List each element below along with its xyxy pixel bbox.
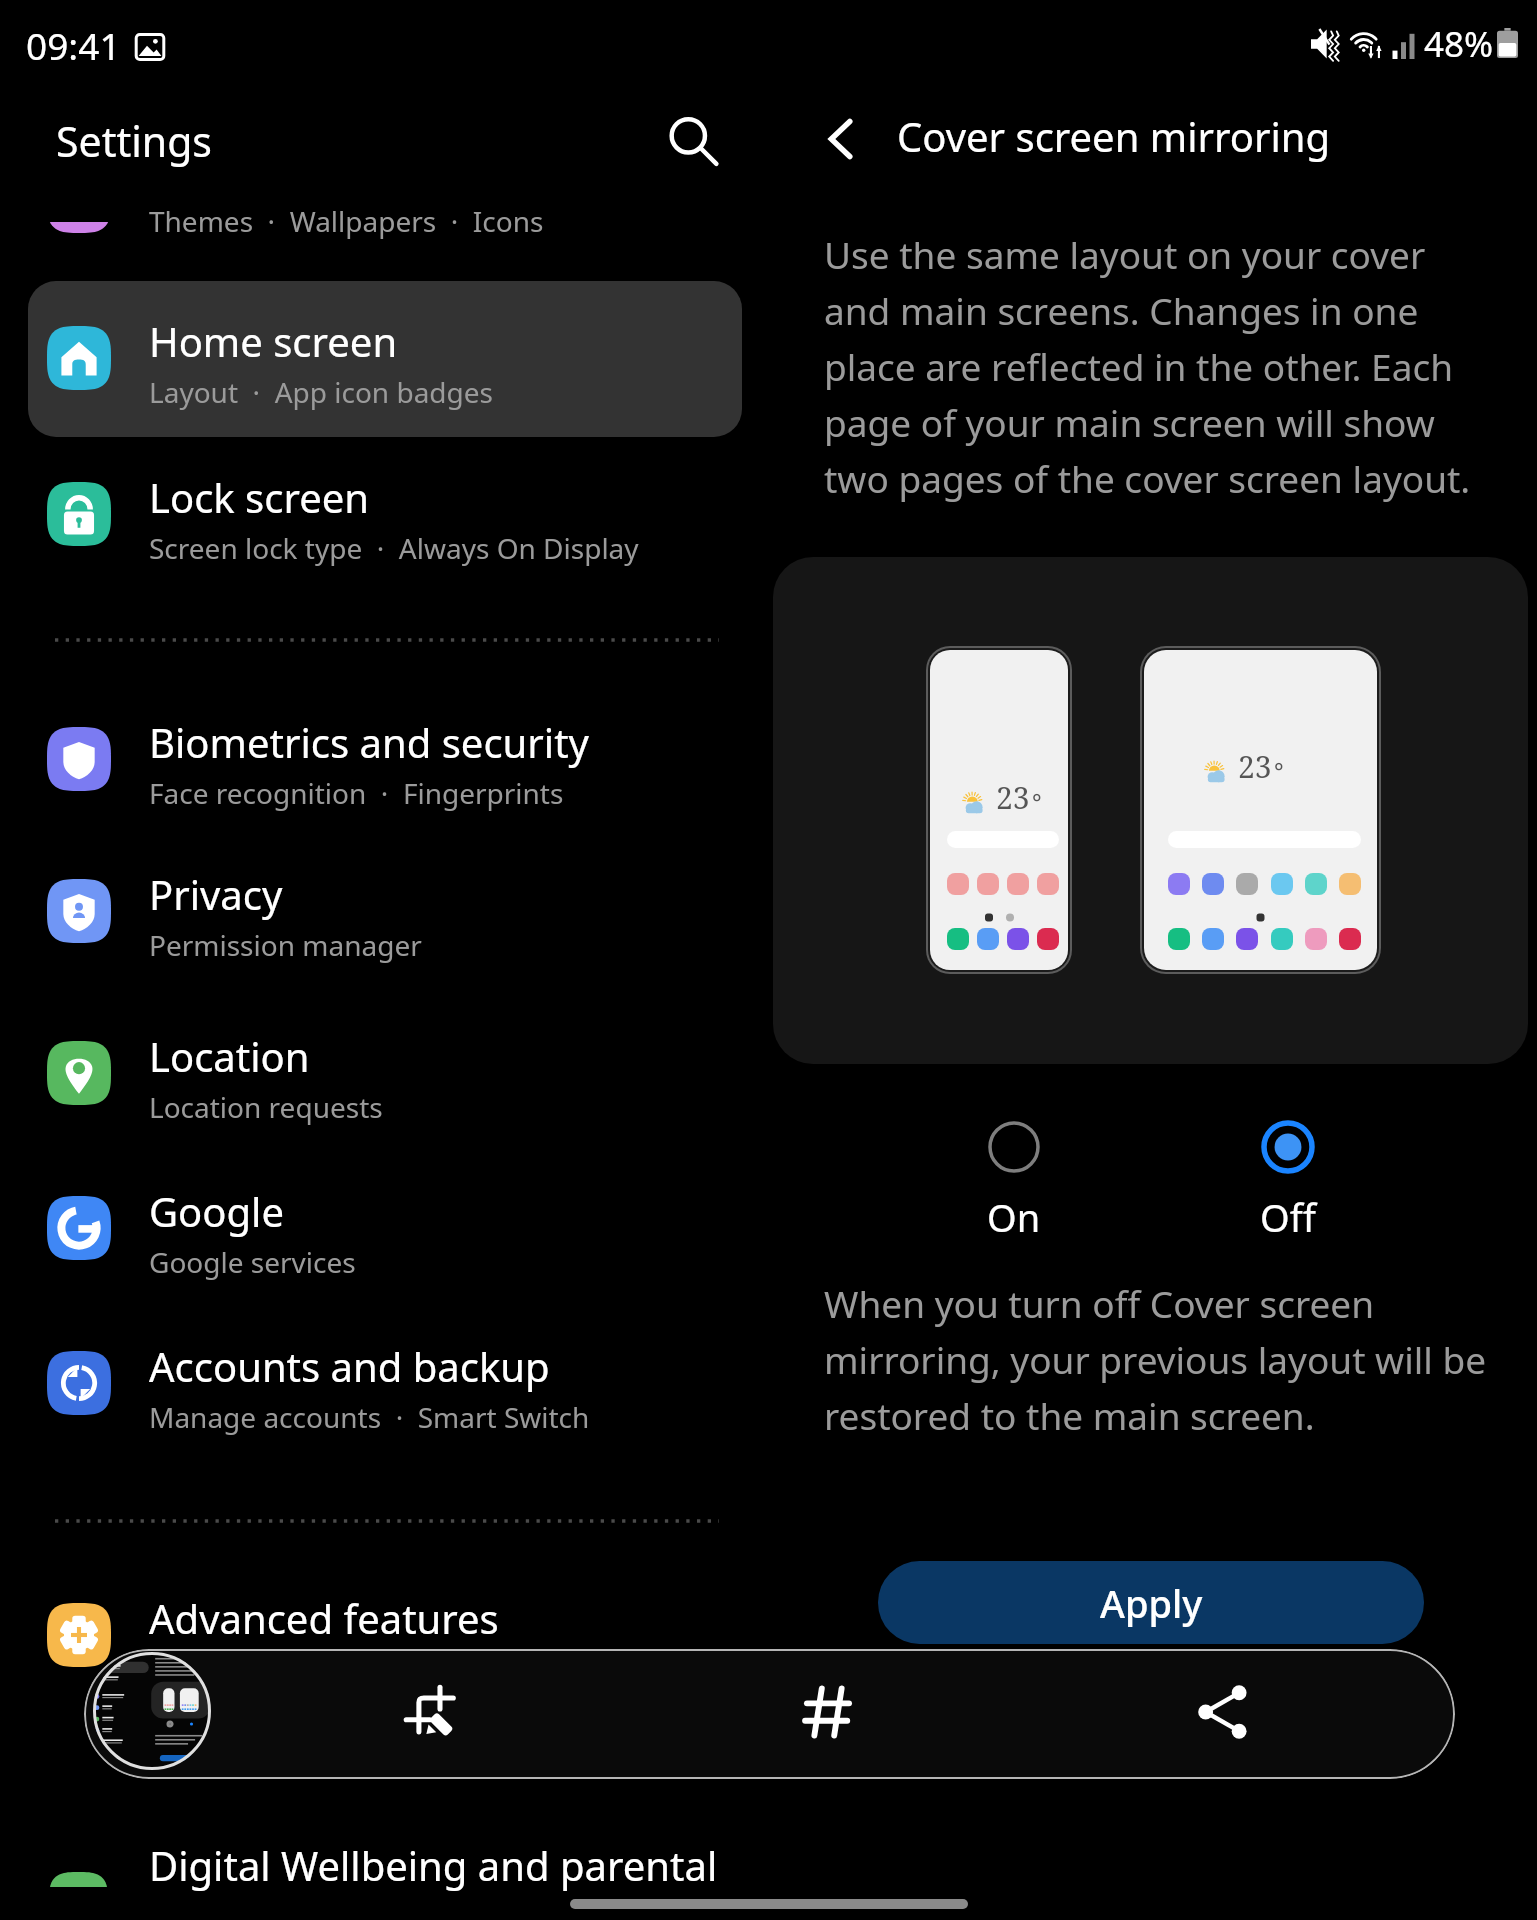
staticText: 09:41 <box>26 20 121 70</box>
staticText: Accounts and backup <box>149 1339 550 1393</box>
staticText: Google <box>149 1184 284 1238</box>
button[interactable]: Tags <box>764 1648 892 1776</box>
staticText: ° <box>1274 754 1284 787</box>
staticText: 48% <box>1424 20 1494 68</box>
button[interactable]: Search <box>657 105 729 177</box>
staticText: Cover screen mirroring <box>897 109 1331 163</box>
button[interactable]: Home screen <box>0 283 768 401</box>
button[interactable]: Off <box>1208 1119 1368 1243</box>
button[interactable]: Privacy <box>0 836 768 954</box>
staticText: Manage accounts · Smart Switch <box>149 1398 590 1436</box>
staticText: On <box>987 1191 1041 1243</box>
button[interactable]: Location <box>0 998 768 1116</box>
staticText: Themes · Wallpapers · Icons <box>149 202 544 240</box>
button[interactable]: Accounts and backup <box>0 1308 768 1426</box>
button[interactable] <box>28 281 742 437</box>
staticText: ° <box>1032 785 1042 818</box>
button[interactable]: Crop and edit <box>367 1648 495 1776</box>
button[interactable]: Screenshot preview <box>93 1652 211 1770</box>
staticText: 23 <box>996 777 1030 818</box>
staticText: Face recognition · Fingerprints <box>149 774 564 812</box>
staticText: Permission manager <box>149 926 422 964</box>
button[interactable]: Share <box>1159 1648 1287 1776</box>
staticText: Screen lock type · Always On Display <box>149 529 639 567</box>
staticText: Settings <box>56 113 213 169</box>
button[interactable]: Biometrics and security <box>0 684 768 802</box>
staticText: Home screen <box>149 314 398 368</box>
button[interactable]: Advanced features <box>0 1560 768 1632</box>
staticText: Google services <box>149 1243 356 1281</box>
staticText: Digital Wellbeing and parental <box>149 1838 718 1892</box>
staticText: Privacy <box>149 867 283 921</box>
button[interactable]: Google <box>0 1153 768 1271</box>
staticText: Biometrics and security <box>149 715 589 769</box>
staticText: Lock screen <box>149 470 370 524</box>
staticText: Location requests <box>149 1088 383 1126</box>
staticText: Off <box>1260 1191 1316 1243</box>
staticText: Location <box>149 1029 310 1083</box>
staticText: Advanced features <box>149 1591 499 1645</box>
staticText: Layout · App icon badges <box>149 373 494 411</box>
button[interactable]: On <box>934 1119 1094 1243</box>
button[interactable]: Back <box>808 106 874 172</box>
staticText: Apply <box>1100 1577 1203 1629</box>
button[interactable]: Lock screen <box>0 439 768 557</box>
staticText: When you turn off Cover screen mirroring… <box>824 1278 1487 1441</box>
staticText: 23 <box>1238 746 1272 787</box>
staticText: Use the same layout on your cover and ma… <box>824 229 1471 504</box>
button[interactable]: Apply <box>878 1561 1424 1644</box>
